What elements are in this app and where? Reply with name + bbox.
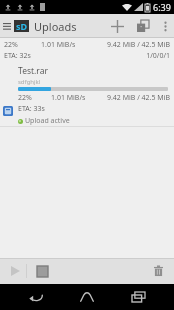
button[interactable]: Back — [21, 284, 51, 310]
button[interactable]: Recent apps — [123, 284, 153, 310]
staticText: 9.42 MiB / 42.5 MiB — [95, 40, 170, 50]
button[interactable]: Home — [72, 284, 102, 310]
staticText: 1/0/0/1 — [87, 51, 170, 61]
staticText: ETA: 32s — [4, 51, 87, 61]
staticText: Test.rar — [18, 65, 48, 77]
button[interactable]: Resume — [4, 260, 26, 282]
button[interactable]: Navigation menu — [0, 14, 14, 38]
button[interactable]: More options — [156, 14, 174, 38]
button[interactable]: Test.rar — [0, 63, 174, 86]
button[interactable]: Add — [104, 14, 130, 38]
staticText: 9.42 MiB / 42.5 MiB — [103, 93, 170, 103]
staticText: 22% — [4, 40, 41, 50]
button[interactable]: Delete — [146, 259, 170, 283]
staticText: ETA: 33s — [18, 104, 45, 114]
staticText: 6:39 — [153, 1, 171, 13]
staticText: Upload active — [25, 116, 70, 126]
staticText: 1.01 MiB/s — [51, 93, 103, 103]
staticText: Uploads — [34, 19, 77, 34]
staticText: sdfghjkl — [18, 78, 41, 86]
staticText: 22% — [18, 93, 51, 103]
staticText: sD — [16, 20, 28, 32]
button[interactable]: Stop — [31, 260, 53, 282]
button[interactable]: New transfer — [130, 14, 156, 38]
staticText: 1.01 MiB/s — [41, 40, 95, 50]
